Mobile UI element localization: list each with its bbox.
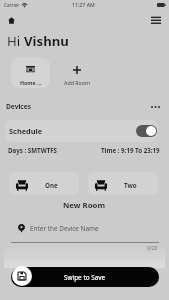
button[interactable]: Two [88, 172, 158, 195]
button[interactable]: Add Room [57, 58, 96, 88]
button[interactable]: Save [12, 266, 32, 286]
staticText: Two [124, 181, 137, 189]
button[interactable]: Swipe to Save [11, 267, 159, 287]
button[interactable]: One [9, 172, 79, 195]
staticText: 11:27 AM [72, 1, 95, 8]
button[interactable]: Home [4, 13, 18, 27]
staticText: Vishnu [24, 32, 69, 50]
staticText: Hi [7, 32, 24, 50]
button[interactable]: Home ... [11, 58, 50, 88]
staticText: Schedule [9, 126, 43, 136]
staticText: Carrier [4, 2, 20, 8]
staticText: Home ... [20, 79, 42, 86]
staticText: Enter the Device Name [30, 224, 99, 233]
button[interactable]: Menu [149, 13, 163, 27]
staticText: Add Room [64, 79, 90, 86]
button[interactable]: More options [148, 100, 162, 114]
button[interactable] [136, 125, 157, 137]
button[interactable]: Schedule [5, 120, 158, 142]
staticText: Devices [6, 102, 32, 111]
staticText: One [45, 181, 58, 189]
staticText: Swipe to Save [64, 273, 106, 282]
staticText: 0/20 [147, 245, 158, 252]
staticText: Time : 9:19 To 23:19 [101, 146, 160, 154]
staticText: New Room [63, 200, 106, 211]
staticText: Days : SMTWTFS [8, 146, 58, 154]
